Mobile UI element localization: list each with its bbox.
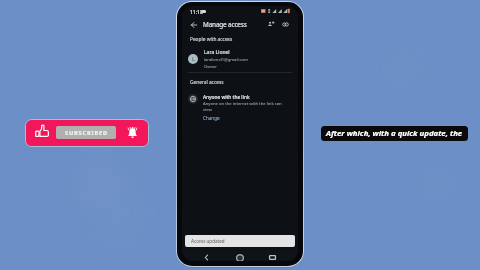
button[interactable]: Anyone with the link [182, 93, 298, 127]
button[interactable]: L [182, 46, 298, 72]
button[interactable]: SUBSCRIBED [56, 126, 116, 139]
staticText: Manage access [203, 20, 247, 29]
staticText: SUBSCRIBED [65, 129, 108, 137]
staticText: Access updated [191, 238, 225, 244]
button[interactable]: Recent apps [267, 252, 278, 261]
staticText: Anyone with the link [203, 94, 250, 100]
staticText: Owner [204, 64, 217, 70]
staticText: 11:18 [190, 9, 203, 16]
other: Like [34, 123, 50, 139]
staticText: People with access [190, 36, 233, 43]
other: Notifications [125, 124, 140, 140]
staticText: Anyone on the internet with the link can… [203, 101, 285, 112]
button[interactable]: Like [26, 120, 148, 146]
staticText: laralionel1@gmail.com [204, 57, 248, 63]
staticText: After which, with a quick update, the [326, 128, 463, 139]
staticText: General access [190, 79, 224, 86]
button[interactable]: Change [203, 115, 220, 121]
staticText: Change [203, 115, 220, 121]
button[interactable]: Access updated [185, 235, 295, 247]
button[interactable]: Back [187, 18, 200, 31]
staticText: L [192, 55, 195, 63]
button[interactable]: Back [201, 252, 212, 261]
button[interactable]: Copy link [280, 19, 290, 29]
staticText: Lara Lionel [204, 49, 230, 56]
button[interactable]: Home [234, 252, 245, 261]
button[interactable]: Add people [266, 19, 276, 29]
